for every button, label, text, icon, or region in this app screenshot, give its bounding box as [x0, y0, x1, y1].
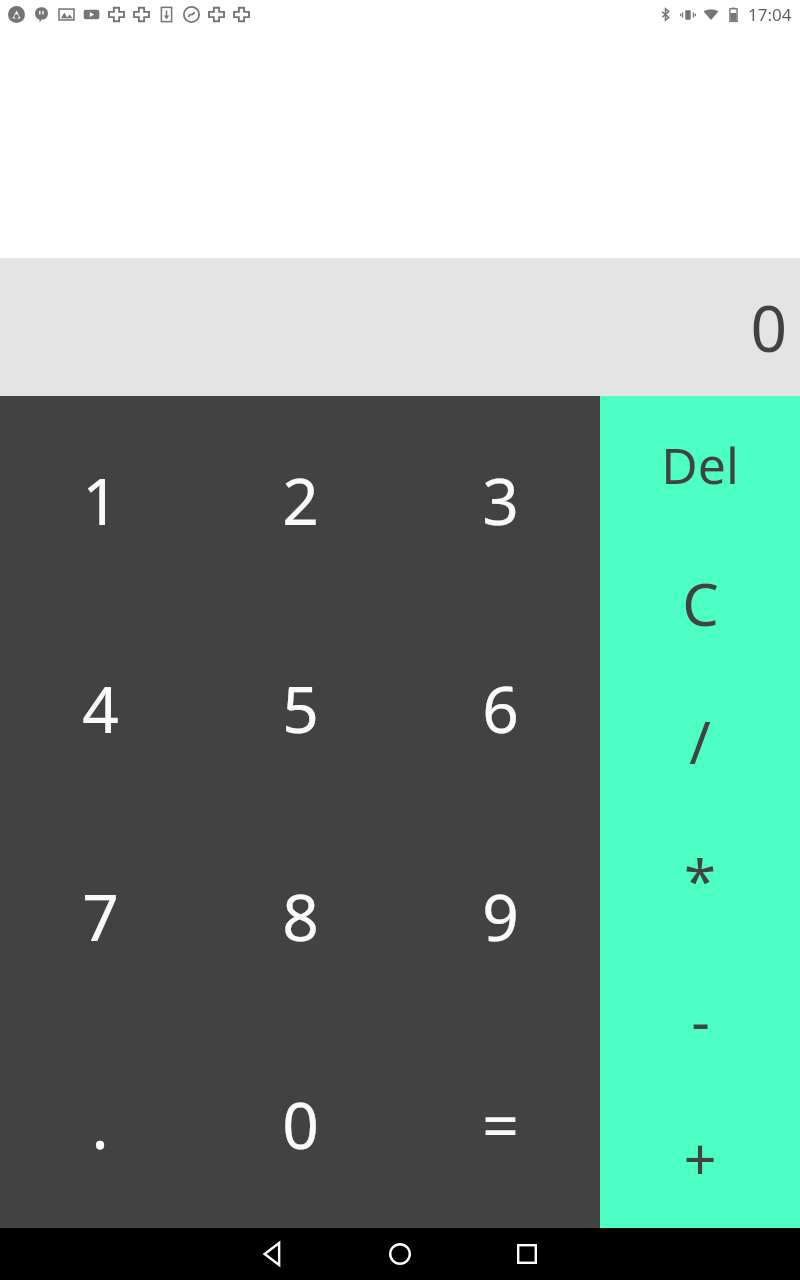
button[interactable]: 2: [200, 396, 400, 604]
staticText: +: [683, 1119, 717, 1198]
staticText: /: [689, 702, 711, 781]
staticText: 2: [282, 457, 319, 544]
staticText: 4: [82, 665, 119, 752]
button[interactable]: -: [600, 950, 800, 1089]
staticText: 17:04: [748, 3, 792, 26]
staticText: 5: [282, 665, 319, 752]
button[interactable]: 3: [400, 396, 600, 604]
button[interactable]: +: [600, 1089, 800, 1228]
button[interactable]: 9: [400, 812, 600, 1020]
button[interactable]: 4: [0, 604, 200, 812]
staticText: 0: [750, 284, 787, 371]
staticText: Del: [661, 431, 739, 499]
staticText: .: [91, 1081, 109, 1168]
button[interactable]: 0: [200, 1020, 400, 1228]
button[interactable]: .: [0, 1020, 200, 1228]
button[interactable]: 8: [200, 812, 400, 1020]
staticText: 6: [482, 665, 519, 752]
button[interactable]: 7: [0, 812, 200, 1020]
staticText: 9: [482, 873, 519, 960]
button[interactable]: Home: [367, 1228, 433, 1280]
button[interactable]: 5: [200, 604, 400, 812]
button[interactable]: /: [600, 672, 800, 811]
button[interactable]: 6: [400, 604, 600, 812]
staticText: 8: [282, 873, 319, 960]
staticText: *: [684, 841, 716, 920]
button[interactable]: Recent apps: [494, 1228, 560, 1280]
button[interactable]: 1: [0, 396, 200, 604]
staticText: -: [691, 980, 710, 1059]
staticText: C: [682, 564, 719, 643]
staticText: 1: [82, 457, 119, 544]
staticText: =: [482, 1081, 519, 1168]
button[interactable]: C: [600, 534, 800, 672]
button[interactable]: Del: [600, 396, 800, 534]
button[interactable]: *: [600, 811, 800, 950]
staticText: 7: [82, 873, 119, 960]
button[interactable]: Back: [240, 1228, 306, 1280]
staticText: 0: [282, 1081, 319, 1168]
button[interactable]: =: [400, 1020, 600, 1228]
staticText: 3: [482, 457, 519, 544]
